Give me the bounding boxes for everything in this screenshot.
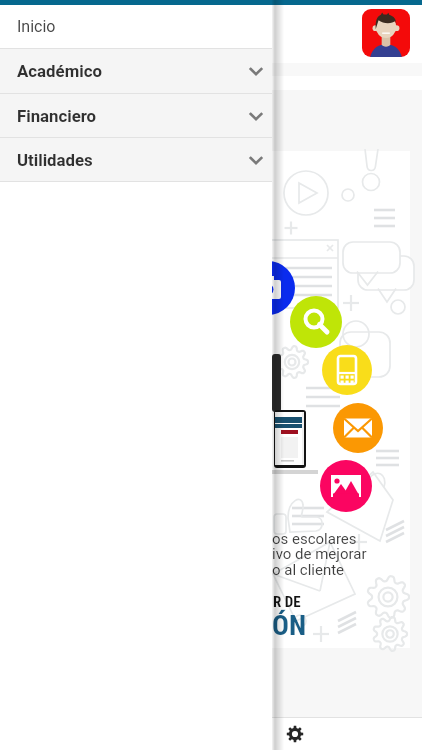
button[interactable]: Académico (0, 49, 272, 93)
staticText: o al cliente (272, 561, 345, 579)
staticText: Inicio (17, 17, 56, 36)
button[interactable]: Utilidades (0, 138, 272, 181)
staticText: Utilidades (17, 150, 93, 170)
staticText: Académico (17, 61, 102, 81)
button[interactable]: Inicio (0, 5, 272, 48)
staticText: Financiero (17, 106, 97, 126)
staticText: os escolares (272, 530, 357, 548)
staticText: ÓN (272, 609, 307, 642)
button[interactable]: Perfil (362, 9, 410, 57)
staticText: R DE (273, 593, 301, 611)
button[interactable]: Financiero (0, 94, 272, 137)
staticText: ivo de mejorar (272, 545, 367, 563)
button[interactable]: Configuración (283, 722, 307, 746)
